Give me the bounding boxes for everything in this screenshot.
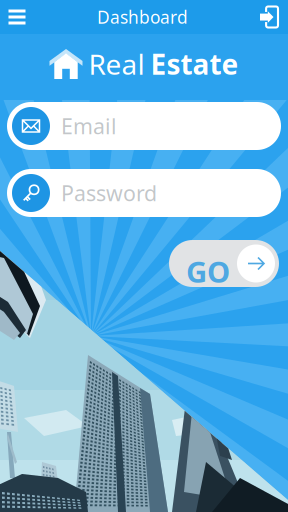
staticText: Password bbox=[61, 179, 157, 207]
staticText: Email bbox=[61, 112, 117, 140]
button[interactable]: Sign in bbox=[251, 0, 288, 34]
staticText: Dashboard bbox=[97, 5, 188, 28]
staticText: Estate bbox=[150, 45, 238, 83]
button[interactable]: Menu bbox=[0, 0, 34, 34]
staticText: Real bbox=[88, 45, 144, 83]
staticText: GO bbox=[186, 252, 230, 291]
button[interactable]: GO bbox=[169, 240, 279, 287]
